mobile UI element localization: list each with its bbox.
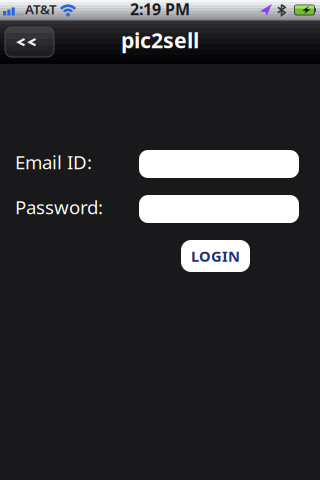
button[interactable]: LOGIN [181, 240, 250, 272]
staticText: LOGIN [191, 246, 240, 266]
staticText: 2:19 PM [130, 0, 190, 20]
button[interactable]: Password text field [139, 195, 299, 223]
staticText: Email ID: [15, 150, 92, 174]
button[interactable]: Email ID text field [139, 150, 299, 178]
staticText: pic2sell [121, 26, 199, 54]
staticText: Password: [15, 195, 103, 219]
staticText: AT&T [25, 0, 57, 18]
button[interactable]: Back [5, 27, 54, 57]
